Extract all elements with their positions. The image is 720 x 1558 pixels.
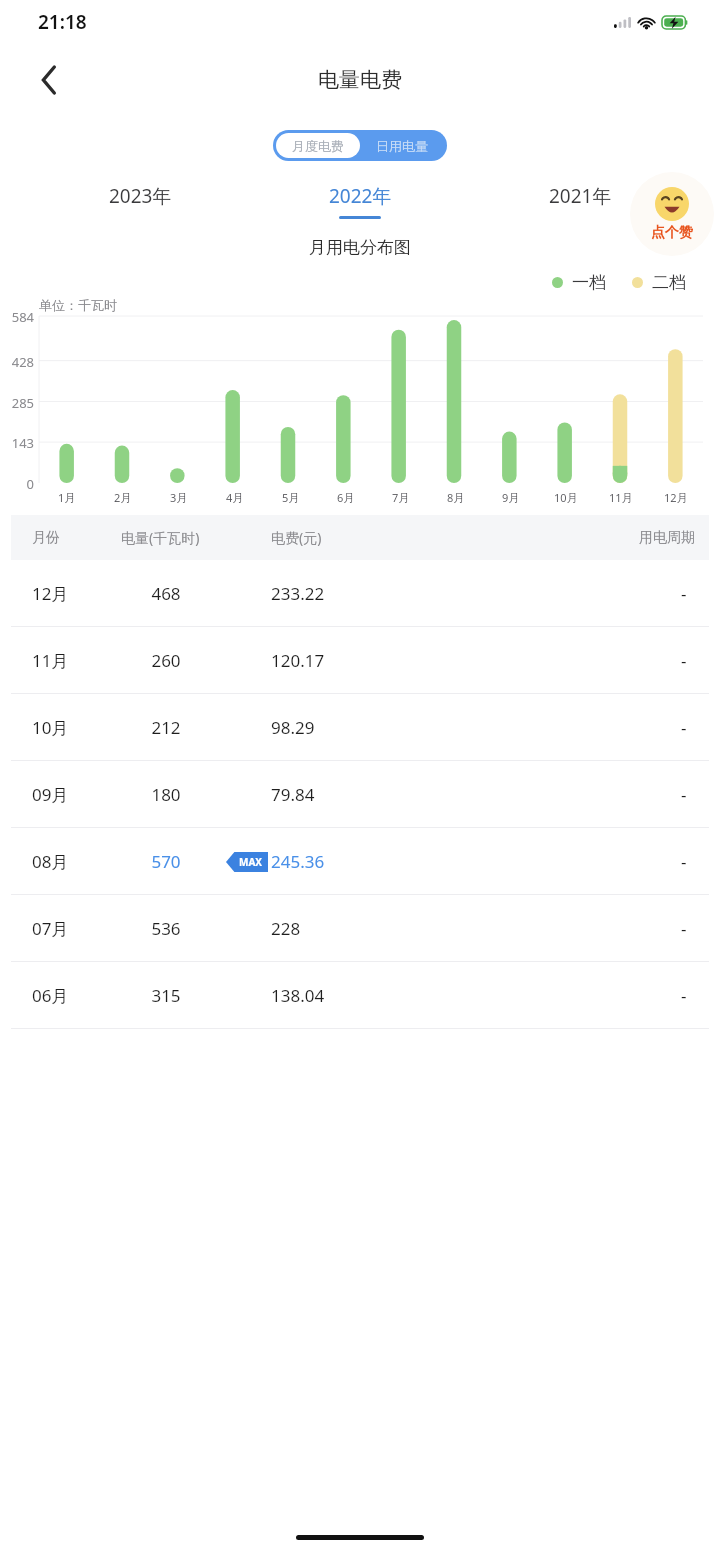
staticText: 98.29	[271, 716, 681, 739]
staticText: 月度电费	[292, 138, 344, 154]
staticText: 一档	[572, 272, 606, 293]
staticText: -	[681, 649, 687, 672]
staticText: 260	[121, 649, 211, 672]
staticText: 电费(元)	[271, 528, 639, 547]
staticText: 月用电分布图	[0, 237, 720, 258]
staticText: -	[681, 850, 687, 873]
button[interactable]: 11月	[11, 627, 709, 693]
staticText: 5月	[282, 490, 300, 505]
staticText: 212	[121, 716, 211, 739]
staticText: -	[681, 716, 687, 739]
staticText: 8月	[447, 490, 465, 505]
staticText: 12月	[32, 582, 121, 605]
staticText: 10月	[554, 490, 578, 505]
staticText: 2月	[114, 490, 132, 505]
staticText: -	[681, 783, 687, 806]
staticText: 月份	[32, 529, 121, 547]
staticText: 228	[271, 917, 681, 940]
button[interactable]: 08月	[11, 828, 709, 894]
staticText: 285	[0, 394, 34, 412]
button[interactable]: 2023年	[30, 183, 250, 219]
staticText: 单位：千瓦时	[39, 297, 117, 313]
button[interactable]: 10月	[11, 694, 709, 760]
staticText: 0	[0, 475, 34, 493]
button[interactable]: 09月	[11, 761, 709, 827]
staticText: 08月	[32, 850, 121, 873]
button[interactable]: 2021年	[470, 183, 690, 219]
staticText: 120.17	[271, 649, 681, 672]
staticText: 用电周期	[639, 529, 695, 547]
staticText: 180	[121, 783, 211, 806]
staticText: 09月	[32, 783, 121, 806]
button[interactable]: 月度电费	[276, 133, 360, 158]
staticText: 4月	[226, 490, 244, 505]
button[interactable]: Back	[26, 57, 72, 103]
staticText: 584	[0, 308, 34, 326]
staticText: 点个赞	[651, 224, 693, 242]
staticText: 9月	[502, 490, 520, 505]
staticText: 1月	[58, 490, 76, 505]
button[interactable]: 日用电量	[360, 133, 444, 158]
button[interactable]: 12月	[11, 560, 709, 626]
staticText: 06月	[32, 984, 121, 1007]
staticText: 428	[0, 353, 34, 371]
staticText: 10月	[32, 716, 121, 739]
staticText: -	[681, 984, 687, 1007]
staticText: 电量电费	[318, 67, 402, 93]
staticText: 536	[121, 917, 211, 940]
staticText: 7月	[392, 490, 410, 505]
button[interactable]: 2022年	[250, 183, 470, 219]
staticText: 07月	[32, 917, 121, 940]
button[interactable]: 07月	[11, 895, 709, 961]
staticText: 315	[121, 984, 211, 1007]
button[interactable]: 06月	[11, 962, 709, 1028]
staticText: 468	[121, 582, 211, 605]
staticText: 二档	[652, 272, 686, 293]
button[interactable]: 点个赞	[630, 172, 714, 256]
staticText: 6月	[337, 490, 355, 505]
staticText: -	[681, 917, 687, 940]
staticText: 电量(千瓦时)	[121, 528, 271, 547]
staticText: 日用电量	[376, 138, 428, 154]
staticText: 2022年	[329, 183, 392, 209]
staticText: 12月	[664, 490, 688, 505]
staticText: 2021年	[549, 183, 612, 209]
staticText: -	[681, 582, 687, 605]
staticText: 245.36	[271, 850, 681, 873]
staticText: 21:18	[38, 9, 87, 35]
staticText: 11月	[609, 490, 633, 505]
staticText: 138.04	[271, 984, 681, 1007]
staticText: 143	[0, 434, 34, 452]
staticText: MAX	[239, 855, 263, 869]
staticText: 570	[121, 850, 211, 873]
staticText: 3月	[170, 490, 188, 505]
staticText: 79.84	[271, 783, 681, 806]
staticText: 11月	[32, 649, 121, 672]
staticText: 2023年	[109, 183, 172, 209]
staticText: 233.22	[271, 582, 681, 605]
